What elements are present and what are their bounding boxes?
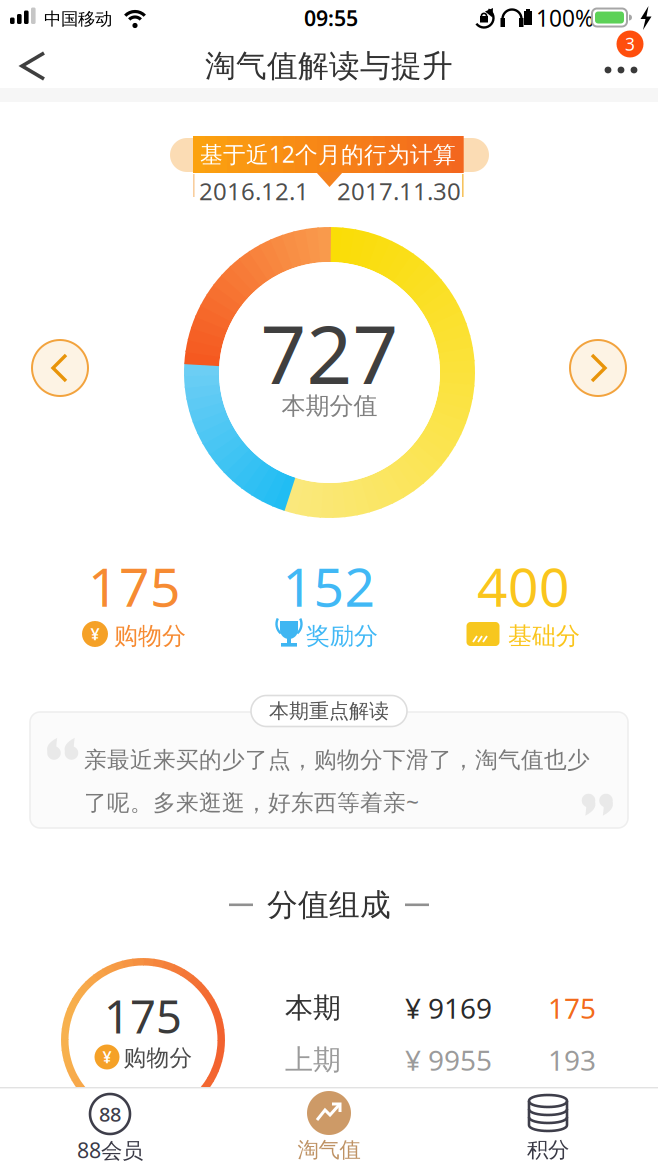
staticText: 88会员 bbox=[77, 1136, 143, 1164]
staticText: 100% bbox=[536, 3, 594, 33]
staticText: 175 bbox=[548, 989, 596, 1027]
staticText: 88 bbox=[99, 1101, 121, 1127]
button[interactable]: 88 bbox=[40, 1089, 180, 1169]
staticText: 152 bbox=[282, 551, 375, 621]
staticText: 中国移动 bbox=[44, 8, 112, 30]
staticText: 本期重点解读 bbox=[269, 699, 389, 723]
button[interactable]: More bbox=[592, 32, 644, 88]
button[interactable]: Next bbox=[570, 340, 626, 396]
staticText: 193 bbox=[548, 1041, 596, 1079]
staticText: ¥ bbox=[90, 623, 99, 645]
staticText: 2017.11.30 bbox=[337, 175, 461, 207]
staticText: ¥ 9169 bbox=[405, 989, 492, 1027]
staticText: 奖励分 bbox=[306, 621, 378, 651]
staticText: 淘气值 bbox=[297, 1137, 360, 1163]
staticText: 09:55 bbox=[304, 4, 358, 32]
button[interactable]: 淘气值 bbox=[259, 1089, 399, 1169]
staticText: 分值组成 bbox=[267, 886, 391, 924]
staticText: 了呢。多来逛逛，好东西等着亲~ bbox=[84, 787, 419, 817]
button[interactable]: Back bbox=[9, 42, 57, 90]
staticText: 购物分 bbox=[114, 621, 186, 651]
staticText: 购物分 bbox=[123, 1044, 192, 1072]
staticText: 2016.12.1 bbox=[199, 175, 309, 207]
staticText: 淘气值解读与提升 bbox=[205, 47, 453, 85]
staticText: 3 bbox=[625, 32, 635, 55]
staticText: 本期 bbox=[285, 991, 341, 1025]
staticText: 上期 bbox=[285, 1043, 341, 1077]
button[interactable]: Previous bbox=[32, 340, 88, 396]
staticText: 基础分 bbox=[508, 621, 580, 651]
staticText: 175 bbox=[88, 551, 181, 621]
staticText: 本期分值 bbox=[281, 391, 377, 421]
staticText: 400 bbox=[477, 551, 570, 621]
staticText: 175 bbox=[104, 986, 182, 1046]
staticText: ¥ 9955 bbox=[405, 1041, 492, 1079]
staticText: 积分 bbox=[527, 1137, 569, 1163]
staticText: 727 bbox=[260, 300, 398, 406]
staticText: 基于近12个月的行为计算 bbox=[200, 139, 456, 169]
staticText: ¥ bbox=[102, 1046, 111, 1068]
button[interactable]: 积分 bbox=[478, 1089, 618, 1169]
staticText: 亲最近来买的少了点，购物分下滑了，淘气值也少 bbox=[84, 746, 590, 774]
